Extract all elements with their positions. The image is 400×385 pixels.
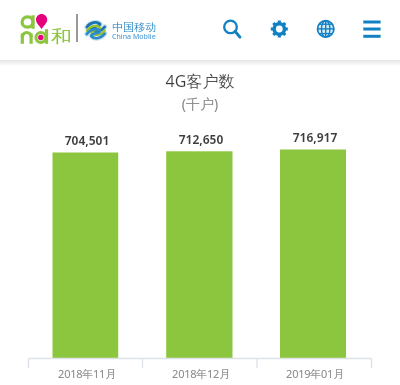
button[interactable]: Settings [265,13,295,45]
staticText: 4G客户数 [0,70,400,92]
button[interactable]: Menu [355,13,387,45]
staticText: 中国移动 [112,20,157,34]
button[interactable]: Search [216,13,246,45]
staticText: 2018年12月 [151,366,251,381]
staticText: 和 [51,26,72,47]
staticText: China Mobile [112,32,156,42]
button[interactable]: and logo [16,10,72,46]
staticText: 716,917 [275,129,355,145]
staticText: 704,501 [47,132,127,148]
staticText: 2019年01月 [265,366,365,381]
staticText: (千户) [0,94,400,113]
staticText: 2018年11月 [37,366,137,381]
button[interactable]: Language [311,13,341,45]
staticText: 712,650 [161,131,241,147]
